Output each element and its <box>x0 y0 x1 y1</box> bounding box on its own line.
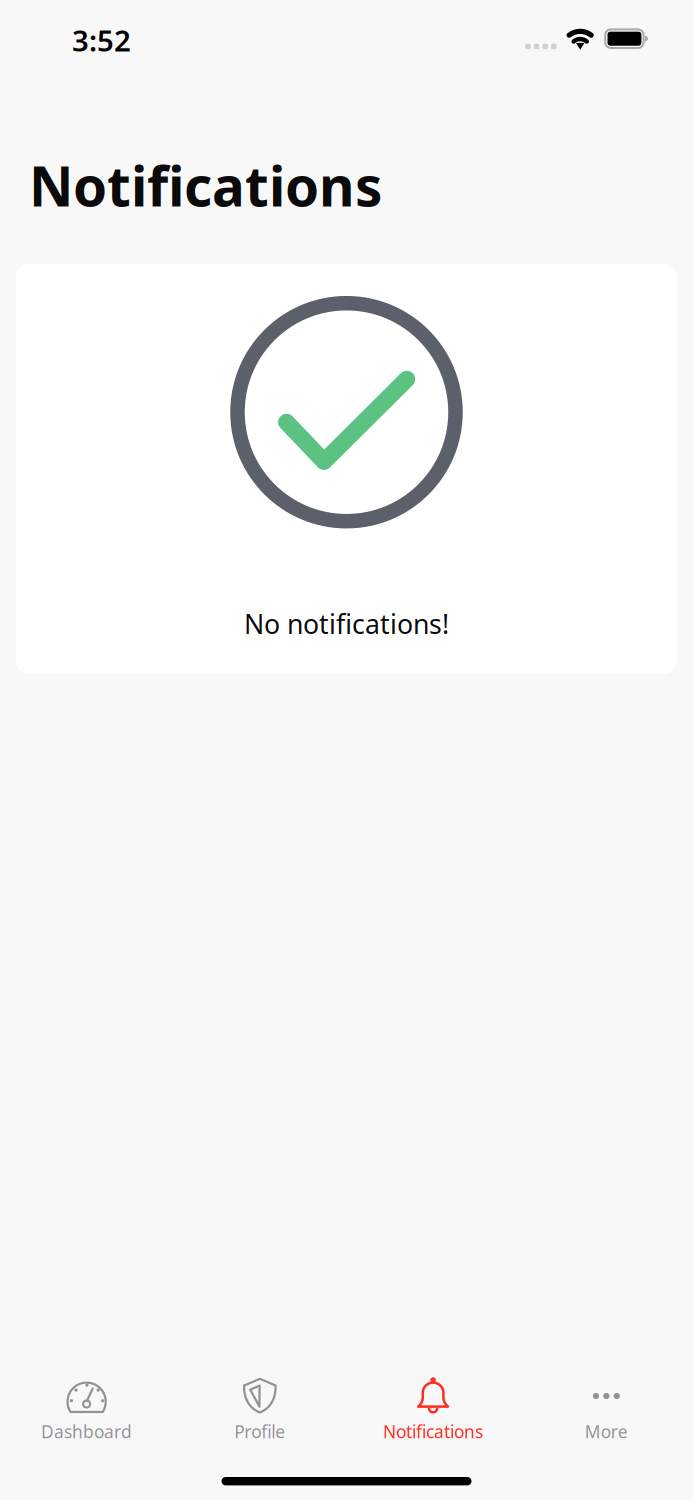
button[interactable]: More <box>520 1373 693 1455</box>
button[interactable]: Dashboard <box>0 1373 173 1455</box>
staticText: Dashboard <box>41 1420 132 1443</box>
button[interactable]: Profile <box>173 1373 346 1455</box>
staticText: Notifications <box>29 149 382 222</box>
staticText: Profile <box>234 1420 285 1443</box>
staticText: More <box>585 1420 628 1443</box>
staticText: 3:52 <box>72 20 131 59</box>
staticText: No notifications! <box>244 606 449 641</box>
button[interactable]: Notifications <box>346 1373 520 1455</box>
staticText: Notifications <box>383 1420 483 1443</box>
